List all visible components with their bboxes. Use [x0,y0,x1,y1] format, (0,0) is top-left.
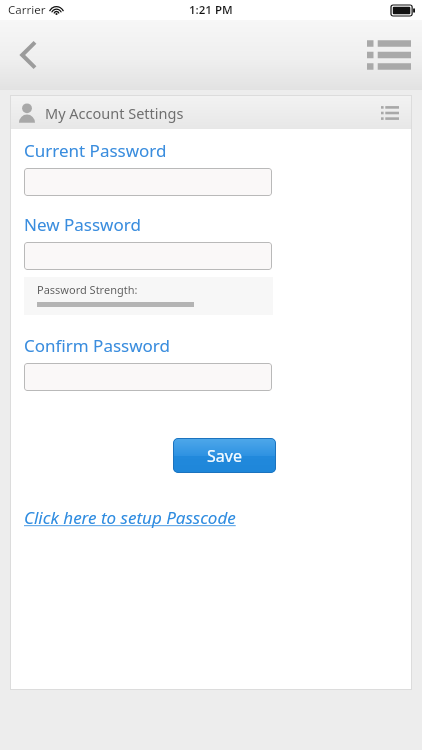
button[interactable] [24,168,272,196]
button[interactable] [24,363,272,391]
staticText: Carrier [8,2,46,18]
button[interactable]: Click here to setup Passcode [24,504,236,531]
button[interactable]: Options [375,99,405,127]
button[interactable]: Menu [362,32,416,78]
button[interactable]: Back [6,32,52,78]
staticText: Password Strength: [37,282,138,297]
staticText: Save [207,445,242,467]
button[interactable] [24,242,272,270]
button[interactable]: Save [173,438,276,473]
staticText: Confirm Password [24,334,170,357]
staticText: 1:21 PM [189,2,233,18]
staticText: New Password [24,213,141,236]
staticText: Current Password [24,139,167,162]
button[interactable]: My Account Settings [11,96,411,129]
staticText: My Account Settings [45,103,184,123]
